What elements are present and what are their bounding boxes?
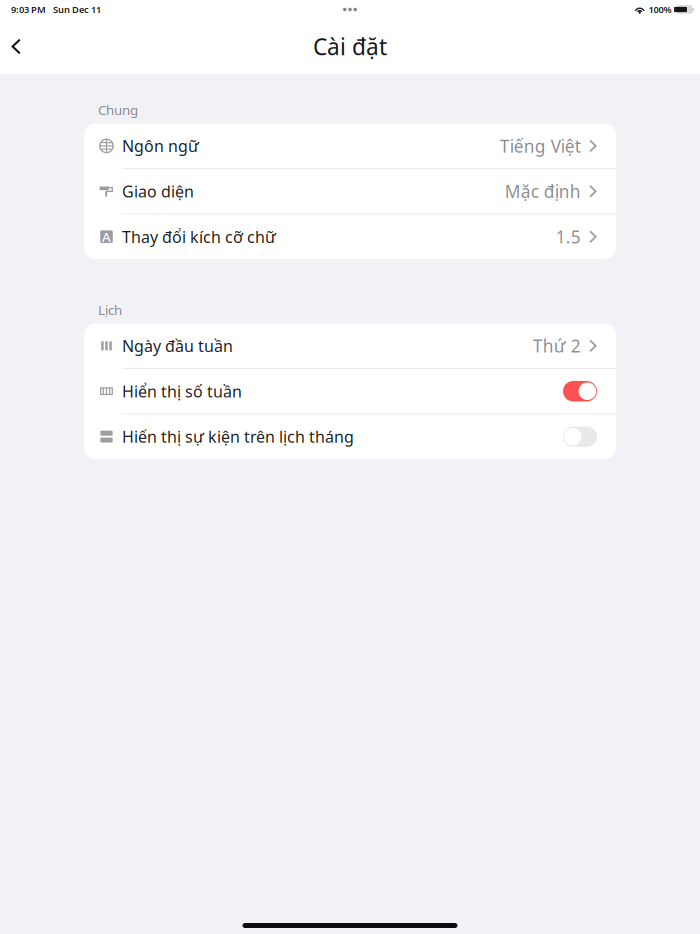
staticText: A xyxy=(102,228,111,246)
button[interactable]: Back xyxy=(0,29,35,64)
button[interactable]: A xyxy=(84,214,616,259)
staticText: 1.5 xyxy=(556,225,581,248)
staticText: Giao diện xyxy=(122,181,194,202)
staticText: 100% xyxy=(648,3,671,16)
button[interactable]: Toggle off xyxy=(563,426,597,447)
staticText: Lịch xyxy=(98,301,122,319)
staticText: Ngôn ngữ xyxy=(122,135,199,156)
button[interactable]: Hiển thị số tuần xyxy=(84,369,616,413)
staticText: Thứ 2 xyxy=(533,334,581,357)
staticText: Ngày đầu tuần xyxy=(122,335,233,356)
staticText: Cài đặt xyxy=(313,31,387,61)
staticText: Mặc định xyxy=(505,180,581,203)
button[interactable]: Giao diện xyxy=(84,169,616,213)
staticText: Hiển thị sự kiện trên lịch tháng xyxy=(122,426,354,447)
staticText: 9:03 PM xyxy=(11,3,46,16)
button[interactable]: Ngôn ngữ xyxy=(84,124,616,168)
button[interactable]: Toggle on xyxy=(563,381,597,401)
staticText: Thay đổi kích cỡ chữ xyxy=(122,226,276,247)
staticText: Chung xyxy=(98,101,138,119)
button[interactable]: Ngày đầu tuần xyxy=(84,324,616,368)
staticText: Sun Dec 11 xyxy=(53,3,101,16)
button[interactable]: Hiển thị sự kiện trên lịch tháng xyxy=(84,414,616,459)
staticText: Tiếng Việt xyxy=(500,134,581,157)
staticText: Hiển thị số tuần xyxy=(122,381,242,402)
